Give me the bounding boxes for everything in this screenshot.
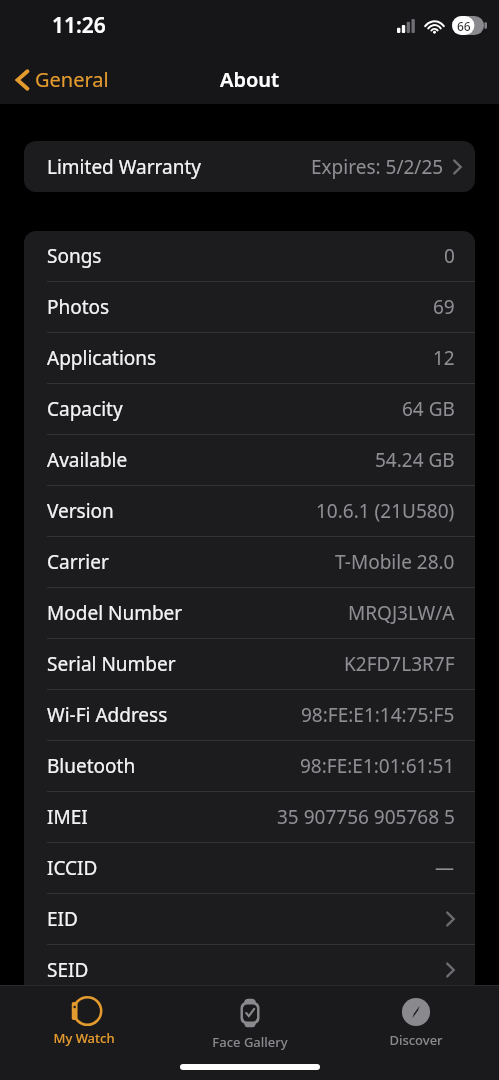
staticText: ICCID	[47, 855, 98, 881]
staticText: Songs	[47, 243, 102, 269]
staticText: 10.6.1 (21U580)	[316, 498, 455, 524]
staticText: Face Gallery	[212, 1033, 288, 1051]
button[interactable]: ICCID	[24, 843, 475, 893]
button[interactable]: Limited Warranty	[24, 141, 475, 192]
staticText: K2FD7L3R7F	[344, 651, 455, 677]
staticText: Discover	[389, 1031, 443, 1049]
button[interactable]: IMEI	[24, 792, 475, 842]
button[interactable]: Applications	[24, 333, 475, 383]
button[interactable]: Songs	[24, 231, 475, 281]
other: Face Gallery	[233, 996, 267, 1030]
button[interactable]: Serial Number	[24, 639, 475, 689]
staticText: 66	[457, 18, 471, 34]
staticText: 12	[433, 345, 455, 371]
staticText: Carrier	[47, 549, 109, 575]
other: Discover	[400, 996, 432, 1028]
staticText: Applications	[47, 345, 157, 371]
staticText: Serial Number	[47, 651, 176, 677]
staticText: SEID	[47, 957, 89, 983]
button[interactable]: Carrier	[24, 537, 475, 587]
staticText: General	[35, 66, 109, 93]
staticText: 54.24 GB	[375, 447, 455, 473]
button[interactable]: General	[12, 62, 113, 97]
staticText: 64 GB	[402, 396, 455, 422]
button[interactable]: Capacity	[24, 384, 475, 434]
button[interactable]: Version	[24, 486, 475, 536]
staticText: 35 907756 905768 5	[277, 804, 455, 830]
staticText: 0	[444, 243, 455, 269]
button[interactable]: Photos	[24, 282, 475, 332]
staticText: My Watch	[53, 1029, 115, 1047]
staticText: Version	[47, 498, 114, 524]
staticText: —	[435, 855, 455, 881]
staticText: T-Mobile 28.0	[335, 549, 455, 575]
staticText: About	[220, 66, 280, 93]
staticText: 98:FE:E1:14:75:F5	[301, 702, 455, 728]
button[interactable]: Available	[24, 435, 475, 485]
staticText: Photos	[47, 294, 110, 320]
staticText: Limited Warranty	[47, 154, 201, 180]
staticText: Bluetooth	[47, 753, 136, 779]
staticText: Wi-Fi Address	[47, 702, 168, 728]
button[interactable]: Model Number	[24, 588, 475, 638]
button[interactable]: Wi-Fi Address	[24, 690, 475, 740]
staticText: 69	[433, 294, 455, 320]
staticText: Model Number	[47, 600, 183, 626]
staticText: Capacity	[47, 396, 123, 422]
staticText: 98:FE:E1:01:61:51	[300, 753, 455, 779]
staticText: EID	[47, 906, 78, 932]
button[interactable]: Face Gallery	[167, 994, 333, 1053]
staticText: 11:26	[52, 11, 106, 40]
button[interactable]: My Watch	[0, 994, 167, 1049]
staticText: IMEI	[47, 804, 88, 830]
button[interactable]: Bluetooth	[24, 741, 475, 791]
staticText: MRQJ3LW/A	[348, 600, 455, 626]
button[interactable]: EID	[24, 894, 475, 944]
staticText: Expires: 5/2/25	[311, 154, 444, 180]
other: My Watch	[67, 996, 101, 1026]
staticText: Available	[47, 447, 128, 473]
button[interactable]: SEID	[24, 945, 475, 995]
button[interactable]: Discover	[333, 994, 499, 1051]
